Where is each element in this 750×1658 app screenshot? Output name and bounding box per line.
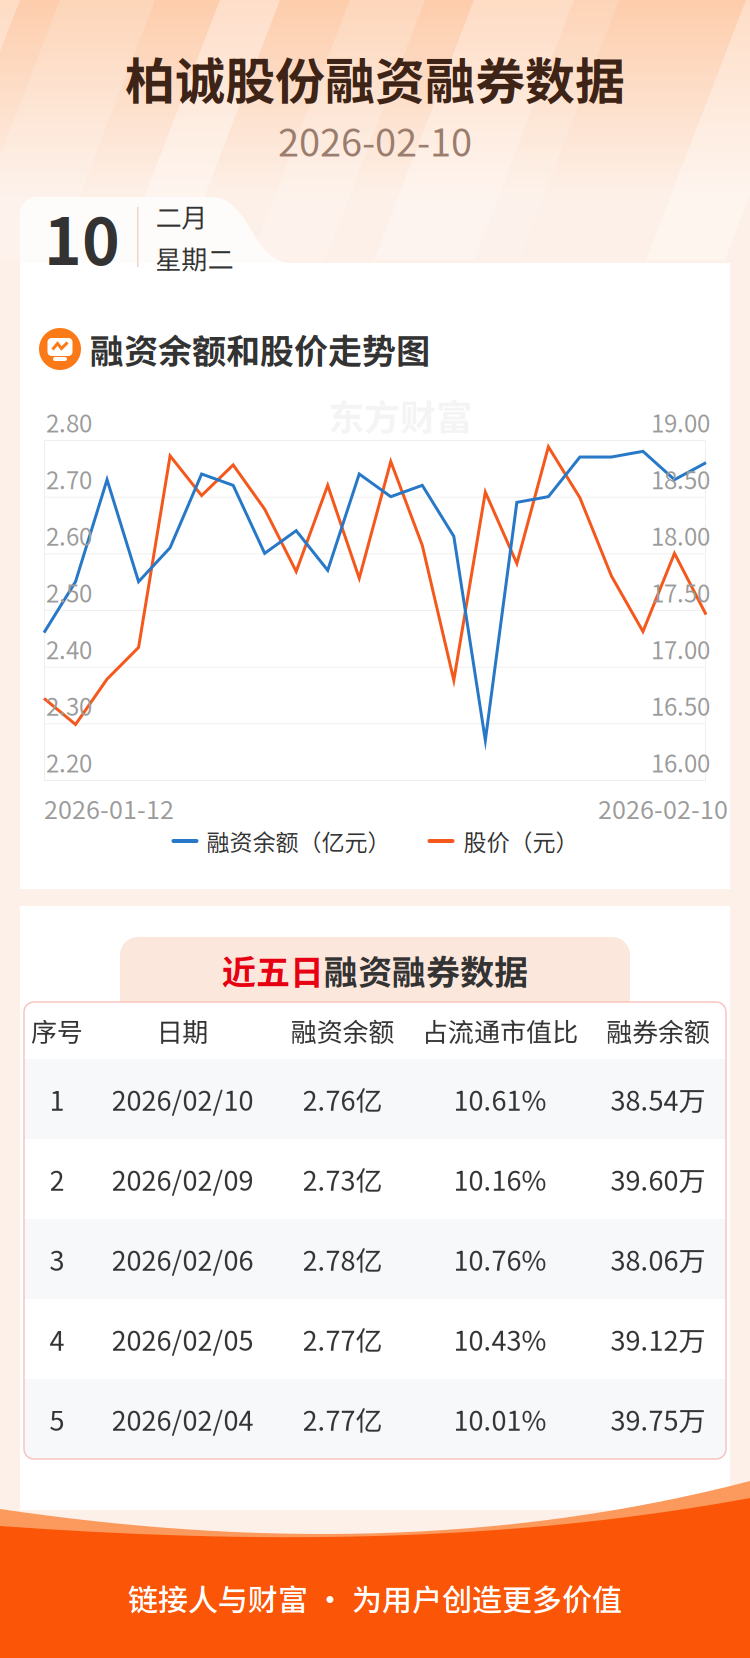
staticText: 2.76亿	[302, 1079, 382, 1119]
staticText: 10.01%	[453, 1399, 546, 1439]
staticText: 10.61%	[453, 1079, 546, 1119]
staticText: 16.00	[651, 745, 710, 779]
staticText: 2.77亿	[302, 1399, 382, 1439]
staticText: 2026/02/04	[111, 1399, 253, 1439]
staticText: 39.60万	[610, 1159, 705, 1199]
staticText: 融资余额和股价走势图	[90, 324, 430, 374]
staticText: 16.50	[651, 688, 710, 723]
button[interactable]: 5	[24, 1379, 726, 1459]
staticText: 近五日	[222, 945, 324, 995]
staticText: 柏诚股份融资融券数据	[125, 42, 625, 114]
staticText: 股价（元）	[463, 824, 578, 858]
staticText: 2026/02/05	[111, 1319, 253, 1359]
staticText: 2	[49, 1159, 64, 1199]
staticText: 17.00	[651, 631, 710, 666]
staticText: 3	[49, 1239, 64, 1279]
staticText: 序号	[31, 1012, 83, 1049]
staticText: 2.60	[46, 518, 92, 553]
staticText: 融资余额（亿元）	[206, 824, 390, 858]
staticText: 18.00	[651, 518, 710, 553]
staticText: 2.78亿	[302, 1239, 382, 1279]
staticText: 10	[44, 191, 120, 283]
staticText: 18.50	[651, 461, 710, 496]
staticText: 10.76%	[453, 1239, 546, 1279]
staticText: 2026-02-10	[598, 790, 728, 826]
staticText: 日期	[156, 1012, 208, 1049]
staticText: 2.50	[46, 575, 92, 609]
staticText: 2026/02/09	[111, 1159, 253, 1199]
staticText: 星期二	[155, 239, 233, 277]
staticText: 10.16%	[453, 1159, 546, 1199]
staticText: 2.73亿	[302, 1159, 382, 1199]
staticText: 2026-02-10	[278, 112, 472, 167]
staticText: 39.75万	[610, 1399, 705, 1439]
staticText: 2026/02/06	[111, 1239, 253, 1279]
staticText: 2.40	[46, 631, 92, 666]
button[interactable]: 2	[24, 1139, 726, 1219]
staticText: 4	[49, 1319, 64, 1359]
staticText: 东方财富	[328, 389, 472, 441]
button[interactable]: 链接人与财富 · 为用户创造更多价值	[0, 1548, 750, 1648]
staticText: 2.80	[46, 405, 92, 439]
staticText: 39.12万	[610, 1319, 705, 1359]
staticText: 19.00	[651, 405, 710, 439]
staticText: 2026/02/10	[111, 1079, 253, 1119]
button[interactable]: 1	[24, 1059, 726, 1139]
button[interactable]: 3	[24, 1219, 726, 1299]
staticText: 2.77亿	[302, 1319, 382, 1359]
staticText: 2026-01-12	[44, 790, 174, 826]
staticText: 38.06万	[610, 1239, 705, 1279]
staticText: 2.30	[46, 688, 92, 723]
staticText: 5	[49, 1399, 64, 1439]
staticText: 二月	[155, 197, 207, 235]
staticText: 2.20	[46, 745, 92, 779]
staticText: 融券余额	[606, 1012, 710, 1049]
staticText: 17.50	[651, 575, 710, 609]
staticText: 10.43%	[453, 1319, 546, 1359]
staticText: 链接人与财富 · 为用户创造更多价值	[128, 1576, 622, 1620]
staticText: 融资融券数据	[324, 945, 528, 995]
button[interactable]: 4	[24, 1299, 726, 1379]
staticText: 38.54万	[610, 1079, 705, 1119]
staticText: 1	[49, 1079, 64, 1119]
staticText: 融资余额	[290, 1012, 394, 1049]
staticText: 占流通市值比	[422, 1012, 578, 1049]
staticText: 2.70	[46, 461, 92, 496]
